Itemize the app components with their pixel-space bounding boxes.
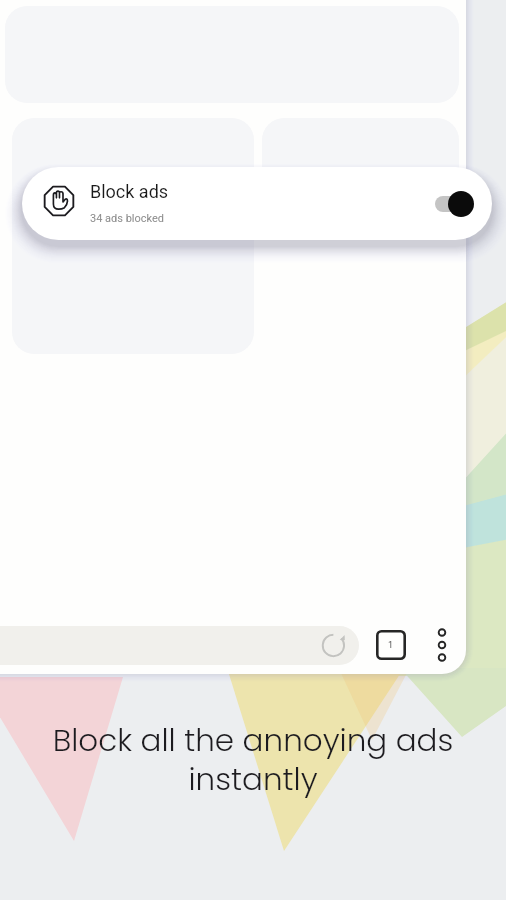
- staticText: Block ads: [90, 181, 169, 202]
- staticText: 34 ads blocked: [90, 212, 165, 225]
- button[interactable]: Tabs: [376, 630, 406, 660]
- staticText: Block all the annoying ads instantly: [0, 718, 506, 800]
- button[interactable]: More options: [424, 627, 460, 663]
- staticText: 1: [388, 640, 394, 651]
- button[interactable]: Address bar: [0, 626, 359, 665]
- button[interactable]: Block ads on: [433, 190, 477, 218]
- button[interactable]: Block ads: [22, 167, 492, 240]
- button[interactable]: Reload: [318, 628, 353, 663]
